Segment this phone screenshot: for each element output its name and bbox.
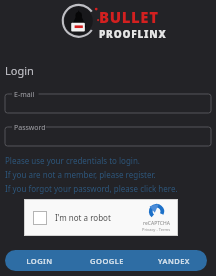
button[interactable]: YANDEX xyxy=(140,250,207,271)
button[interactable]: Please use your credentials to login. xyxy=(5,155,141,166)
staticText: reCAPTCHA xyxy=(143,220,170,227)
staticText: If you are not a member, please register… xyxy=(5,169,156,180)
staticText: YANDEX xyxy=(158,256,190,266)
button[interactable]: If you are not a member, please register… xyxy=(5,169,156,180)
staticText: Password xyxy=(14,123,46,133)
staticText: PROOFLINX xyxy=(99,27,167,41)
button[interactable]: LOGIN xyxy=(5,250,73,271)
staticText: Login xyxy=(5,63,34,78)
staticText: GOOGLE xyxy=(90,256,124,266)
button[interactable]: Password xyxy=(5,123,211,146)
staticText: E-mail xyxy=(14,90,35,100)
button[interactable]: GOOGLE xyxy=(73,250,140,271)
staticText: If you forgot your password, please clic… xyxy=(5,183,178,194)
button[interactable]: E-mail xyxy=(5,90,211,113)
staticText: Please use your credentials to login. xyxy=(5,155,141,166)
staticText: Privacy - Terms xyxy=(142,227,171,232)
staticText: I'm not a robot xyxy=(55,212,111,223)
staticText: LOGIN xyxy=(26,256,53,266)
button[interactable]: I'm not a robot reCAPTCHA xyxy=(24,199,178,236)
button[interactable]: If you forgot your password, please clic… xyxy=(5,183,178,194)
staticText: BULLET xyxy=(99,7,159,27)
